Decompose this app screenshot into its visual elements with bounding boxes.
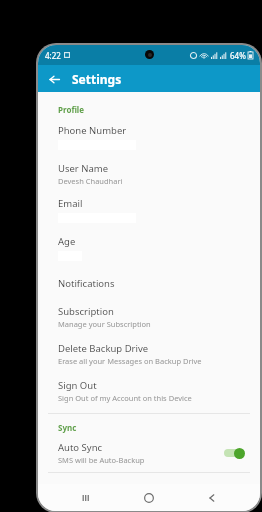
button[interactable]: Notifications — [38, 277, 260, 290]
button[interactable]: Phone Number — [38, 124, 260, 150]
button[interactable]: Auto Sync — [38, 441, 260, 465]
staticText: Phone Number — [58, 124, 127, 137]
staticText: Auto Sync — [58, 441, 103, 454]
staticText: Devesh Chaudhari — [58, 176, 123, 186]
staticText: Notifications — [58, 277, 115, 290]
staticText: Settings — [72, 71, 122, 87]
staticText: Subscription — [58, 305, 114, 318]
staticText: Erase all your Messages on Backup Drive — [58, 356, 202, 366]
button[interactable]: Age — [38, 235, 260, 261]
button[interactable]: Subscription — [38, 305, 260, 329]
button[interactable]: Delete Backup Drive — [38, 342, 260, 366]
button[interactable]: Home — [134, 484, 164, 511]
button[interactable]: Back — [44, 69, 64, 89]
button[interactable]: Back — [197, 484, 227, 511]
button[interactable]: Email — [38, 197, 260, 223]
staticText: Delete Backup Drive — [58, 342, 149, 355]
staticText: Manage your Subscription — [58, 319, 151, 329]
button[interactable]: Recents — [71, 484, 101, 511]
staticText: Sync — [58, 422, 77, 433]
staticText: Age — [58, 235, 76, 248]
staticText: User Name — [58, 162, 109, 175]
staticText: Sign Out — [58, 379, 97, 392]
other: Auto Sync toggle — [224, 447, 246, 459]
staticText: 64% — [230, 50, 246, 61]
button[interactable]: Sign Out — [38, 379, 260, 403]
staticText: Sign Out of my Account on this Device — [58, 393, 192, 403]
staticText: Email — [58, 197, 83, 210]
staticText: SMS will be Auto-Backup — [58, 455, 145, 465]
button[interactable]: User Name — [38, 162, 260, 186]
staticText: 4:22 — [45, 50, 61, 61]
staticText: Profile — [58, 104, 85, 115]
